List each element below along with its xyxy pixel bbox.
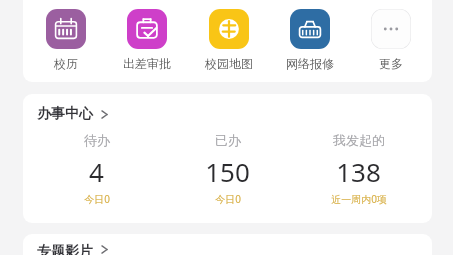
button[interactable]: 校园地图	[209, 9, 249, 49]
staticText: 专题影片	[37, 243, 93, 255]
staticText: 4	[89, 154, 104, 189]
button[interactable]: 已办	[162, 132, 293, 206]
staticText: 出差审批	[123, 56, 171, 71]
button[interactable]: 网络报修	[290, 9, 330, 49]
button[interactable]: 校园地图	[198, 0, 260, 71]
staticText: 待办	[84, 132, 110, 148]
button[interactable]: 办事中心	[37, 105, 109, 123]
staticText: 近一周内0项	[331, 192, 387, 206]
button[interactable]: 校历	[46, 9, 86, 49]
staticText: 我发起的	[333, 132, 385, 148]
button[interactable]: 更多	[360, 0, 422, 71]
button[interactable]: 我发起的	[293, 132, 424, 206]
button[interactable]: 待办	[31, 132, 162, 206]
button[interactable]: 出差审批	[116, 0, 178, 71]
button[interactable]: 出差审批	[127, 9, 167, 49]
staticText: 138	[336, 154, 381, 189]
staticText: 更多	[379, 56, 403, 71]
staticText: 办事中心	[37, 105, 93, 123]
staticText: 校园地图	[205, 56, 253, 71]
staticText: 150	[205, 154, 250, 189]
staticText: 今日0	[215, 192, 241, 206]
staticText: 今日0	[84, 192, 110, 206]
staticText: 已办	[215, 132, 241, 148]
button[interactable]: 校历	[35, 0, 97, 71]
button[interactable]: 网络报修	[279, 0, 341, 71]
staticText: 网络报修	[286, 56, 334, 71]
staticText: 校历	[54, 56, 78, 71]
button[interactable]: 专题影片	[37, 243, 109, 255]
button[interactable]: 更多	[371, 9, 411, 49]
